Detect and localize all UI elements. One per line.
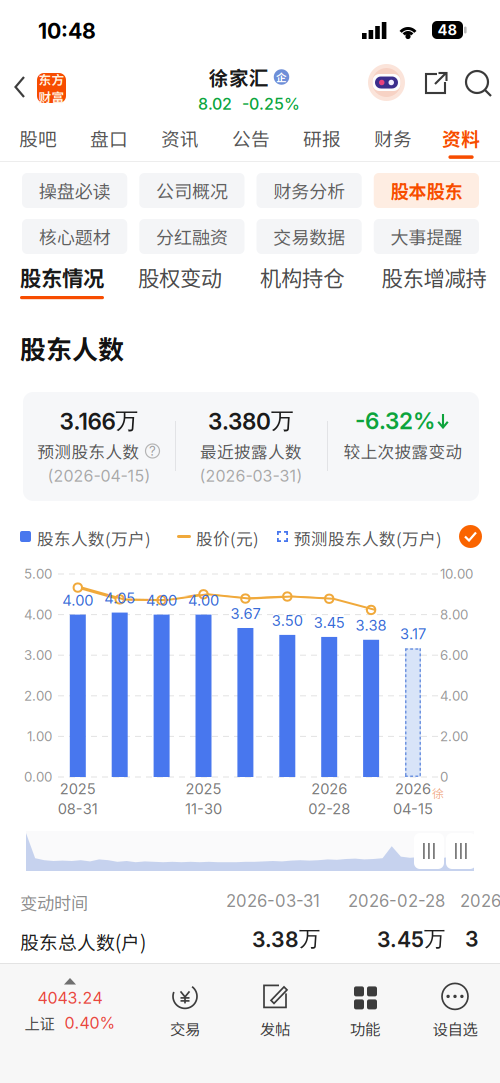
- staticText: 资讯: [161, 124, 199, 151]
- button[interactable]: 资讯: [147, 116, 213, 158]
- staticText: 大事提醒: [390, 223, 462, 250]
- staticText: 上证: [24, 1012, 54, 1034]
- staticText: 2025: [185, 780, 221, 798]
- button[interactable]: 公告: [218, 116, 284, 158]
- staticText: 企: [276, 69, 287, 85]
- staticText: -6.32%: [355, 407, 435, 435]
- staticText: (2026-03-31): [199, 466, 302, 486]
- button[interactable]: 操盘必读: [22, 173, 127, 208]
- staticText: 04-15: [393, 800, 433, 818]
- button[interactable]: 设自选: [410, 979, 500, 1041]
- staticText: 研报: [303, 124, 341, 151]
- button[interactable]: 区间调节: [414, 833, 444, 869]
- staticText: 0.00: [24, 769, 52, 785]
- staticText: 10.00: [440, 566, 473, 582]
- staticText: 4.00: [62, 591, 93, 609]
- staticText: 4.00: [188, 591, 219, 609]
- staticText: 3.38: [356, 617, 387, 634]
- staticText: 东方: [38, 70, 64, 88]
- button[interactable]: 分红融资: [139, 219, 244, 254]
- button[interactable]: 财务分析: [256, 173, 362, 208]
- button[interactable]: 交易: [140, 979, 230, 1041]
- staticText: 08-31: [58, 800, 98, 818]
- staticText: 公司概况: [156, 177, 228, 204]
- staticText: 02-28: [308, 800, 350, 818]
- staticText: 股东情况: [20, 262, 104, 292]
- button[interactable]: 分享: [419, 66, 453, 100]
- button[interactable]: 研报: [289, 116, 355, 158]
- staticText: 最近披露人数: [200, 439, 302, 463]
- staticText: 资料: [442, 124, 480, 151]
- staticText: 2026-03-31: [226, 891, 320, 911]
- staticText: 股东总人数(户): [20, 928, 146, 955]
- staticText: 11-30: [185, 800, 222, 818]
- button[interactable]: 股东增减持: [377, 264, 491, 308]
- staticText: 3.38万: [252, 926, 320, 952]
- button[interactable]: AI助手: [368, 64, 405, 101]
- staticText: 财富: [38, 87, 64, 106]
- staticText: 4.00: [24, 606, 52, 623]
- staticText: 发帖: [260, 1017, 290, 1040]
- button[interactable]: 发帖: [230, 979, 320, 1041]
- staticText: 股价(元): [196, 526, 259, 550]
- staticText: 股东人数: [20, 329, 124, 367]
- staticText: 机构持仓: [260, 262, 344, 292]
- button[interactable]: 资料: [428, 116, 494, 158]
- button[interactable]: 区间调节: [446, 833, 476, 869]
- button[interactable]: 股东情况: [16, 264, 108, 308]
- button[interactable]: 功能: [320, 979, 410, 1041]
- staticText: 3.45万: [377, 926, 445, 952]
- button[interactable]: 公司概况: [139, 173, 244, 208]
- staticText: 1.00: [27, 728, 52, 744]
- staticText: 2026: [395, 780, 431, 798]
- button[interactable]: 大事提醒: [374, 219, 479, 254]
- button[interactable]: 机构持仓: [256, 264, 348, 308]
- button[interactable]: 盘口: [76, 116, 142, 158]
- staticText: 2026: [311, 780, 347, 798]
- staticText: ?: [149, 443, 156, 459]
- staticText: 股本股东: [390, 177, 462, 204]
- staticText: 3.67: [230, 605, 260, 622]
- staticText: 功能: [350, 1017, 380, 1040]
- button[interactable]: 股权变动: [134, 264, 226, 308]
- staticText: 徐: [432, 784, 444, 801]
- button[interactable]: 交易数据: [256, 219, 362, 254]
- button[interactable]: 搜索: [462, 66, 496, 100]
- staticText: 3.45: [314, 614, 345, 631]
- staticText: 4.00: [146, 591, 177, 609]
- staticText: 2025: [60, 780, 96, 798]
- staticText: 4043.24: [37, 988, 102, 1008]
- staticText: (2026-04-15): [47, 466, 150, 486]
- button[interactable]: 股本股东: [374, 173, 479, 208]
- staticText: 股东增减持: [381, 262, 486, 292]
- staticText: 8.02: [198, 94, 232, 114]
- button[interactable]: 返回: [6, 70, 34, 104]
- staticText: 财务: [374, 124, 412, 151]
- staticText: 3.17: [400, 625, 426, 643]
- button[interactable]: 股吧: [5, 116, 71, 158]
- staticText: 0.40%: [64, 1013, 115, 1033]
- staticText: -0.25%: [242, 94, 300, 114]
- staticText: 操盘必读: [39, 177, 111, 204]
- staticText: 股东人数(万户): [37, 526, 151, 550]
- staticText: 8.00: [440, 606, 468, 623]
- staticText: 2.00: [24, 688, 52, 704]
- button[interactable]: 财务: [360, 116, 426, 158]
- staticText: 3.166万: [59, 407, 138, 435]
- button[interactable]: 4043.24: [0, 964, 140, 1044]
- staticText: 10:48: [38, 18, 96, 44]
- staticText: 交易数据: [273, 223, 345, 250]
- staticText: 徐家汇: [209, 63, 269, 91]
- staticText: 2026-02-28: [348, 891, 445, 911]
- staticText: 核心题材: [39, 223, 111, 250]
- staticText: 4.00: [440, 688, 468, 704]
- staticText: 2.00: [440, 728, 468, 744]
- staticText: 财务分析: [273, 177, 345, 204]
- staticText: 设自选: [432, 1017, 477, 1040]
- staticText: 较上次披露变动: [343, 439, 462, 463]
- staticText: 4.05: [104, 589, 135, 607]
- button[interactable]: 核心题材: [22, 219, 127, 254]
- staticText: 交易: [170, 1017, 200, 1040]
- staticText: 盘口: [90, 124, 128, 151]
- button[interactable]: 东方财富: [37, 73, 66, 103]
